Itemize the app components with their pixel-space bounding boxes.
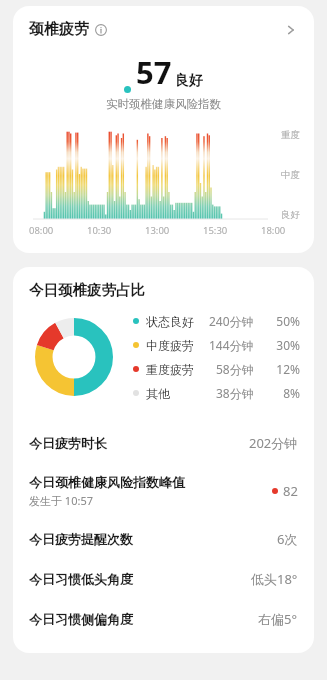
staticText: 240分钟 <box>209 313 254 329</box>
staticText: 中度疲劳 <box>146 338 194 353</box>
staticText: 18:00 <box>261 224 286 237</box>
staticText: 10:30 <box>87 224 112 237</box>
staticText: 08:00 <box>29 224 54 237</box>
staticText: 57 <box>136 51 172 93</box>
staticText: 12% <box>270 361 300 377</box>
button[interactable]: 今日疲劳时长 <box>13 423 314 463</box>
staticText: 今日习惯低头角度 <box>29 571 133 587</box>
staticText: 82 <box>283 482 298 500</box>
staticText: 今日疲劳提醒次数 <box>29 531 133 547</box>
staticText: 今日颈椎健康风险指数峰值 <box>29 474 185 490</box>
staticText: 13:00 <box>145 224 170 237</box>
staticText: 今日习惯侧偏角度 <box>29 611 133 627</box>
staticText: 8% <box>270 385 300 401</box>
button[interactable]: 今日疲劳提醒次数 <box>13 519 314 559</box>
staticText: 15:30 <box>203 224 228 237</box>
staticText: 重度疲劳 <box>146 362 194 377</box>
staticText: 良好 <box>175 72 203 90</box>
button[interactable]: 重度疲劳 <box>133 361 300 377</box>
staticText: 重度 <box>281 129 300 141</box>
staticText: 颈椎疲劳 <box>29 20 89 39</box>
staticText: 30% <box>270 337 300 353</box>
staticText: 6次 <box>277 530 298 548</box>
button[interactable]: 查看详情 <box>282 21 300 39</box>
staticText: 右偏5° <box>258 610 298 628</box>
button[interactable]: 今日习惯侧偏角度 <box>13 599 314 639</box>
staticText: 其他 <box>146 386 170 401</box>
staticText: 38分钟 <box>216 385 254 401</box>
staticText: 实时颈椎健康风险指数 <box>13 97 314 111</box>
staticText: 良好 <box>281 209 300 221</box>
staticText: 今日颈椎疲劳占比 <box>29 281 145 299</box>
staticText: 低头18° <box>251 570 298 588</box>
button[interactable]: 其他 <box>133 385 300 401</box>
staticText: 今日疲劳时长 <box>29 435 107 451</box>
staticText: 中度 <box>281 169 300 181</box>
button[interactable]: 颈椎疲劳 <box>13 6 314 43</box>
staticText: 202分钟 <box>249 434 298 452</box>
button[interactable]: 今日颈椎健康风险指数峰值 <box>13 463 314 519</box>
staticText: 状态良好 <box>146 314 194 329</box>
staticText: 50% <box>270 313 300 329</box>
button[interactable]: 今日习惯低头角度 <box>13 559 314 599</box>
staticText: 144分钟 <box>209 337 254 353</box>
button[interactable]: 中度疲劳 <box>133 337 300 353</box>
staticText: 58分钟 <box>216 361 254 377</box>
button[interactable]: 状态良好 <box>133 313 300 329</box>
staticText: 发生于 10:57 <box>29 493 93 508</box>
